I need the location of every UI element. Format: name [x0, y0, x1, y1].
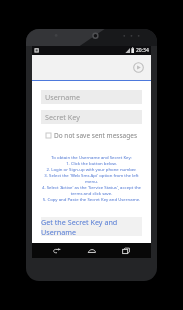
staticText: Get the Secret Key and Username	[41, 217, 142, 236]
staticText: 20:34	[136, 47, 149, 54]
button[interactable]: Get the Secret Key and Username	[41, 217, 142, 236]
button[interactable]: Send	[131, 60, 146, 75]
button[interactable]: Do not save sent messages	[41, 130, 142, 140]
staticText: Do not save sent messages	[54, 131, 137, 140]
button[interactable]: Recents	[116, 243, 136, 258]
button[interactable]: Secret Key	[41, 110, 142, 124]
button[interactable]: Home	[82, 243, 102, 258]
button[interactable]: Username	[41, 90, 142, 104]
staticText: Secret Key	[45, 112, 80, 122]
staticText: To obtain the Username and Secret Key: 1…	[41, 154, 142, 202]
staticText: Username	[45, 92, 80, 102]
button[interactable]: Back	[47, 243, 67, 258]
